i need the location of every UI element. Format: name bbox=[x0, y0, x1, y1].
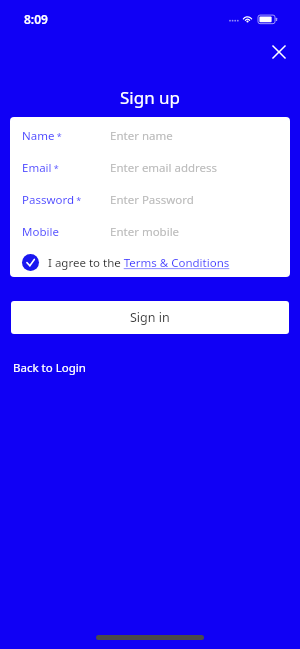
button[interactable]: Back to Login bbox=[8, 357, 91, 379]
staticText: Back to Login bbox=[13, 360, 86, 376]
staticText: Password * bbox=[22, 192, 82, 208]
staticText: Enter email address bbox=[110, 160, 218, 176]
button[interactable]: Password * bbox=[10, 184, 290, 216]
staticText: I agree to the Terms & Conditions bbox=[48, 255, 230, 271]
staticText: Sign in bbox=[130, 309, 170, 326]
button[interactable]: Name * bbox=[10, 120, 290, 152]
staticText: Sign up bbox=[120, 86, 181, 109]
button[interactable]: Sign in bbox=[11, 301, 289, 334]
button[interactable]: I agree to the Terms & Conditions bbox=[10, 248, 290, 277]
staticText: Mobile bbox=[22, 224, 59, 240]
staticText: Enter Password bbox=[110, 192, 194, 208]
staticText: Enter mobile bbox=[110, 224, 180, 240]
button[interactable]: Email * bbox=[10, 152, 290, 184]
staticText: 8:09 bbox=[24, 11, 48, 27]
button[interactable]: Close bbox=[265, 38, 293, 66]
button[interactable]: Mobile bbox=[10, 216, 290, 248]
staticText: Name * bbox=[22, 128, 62, 144]
staticText: Email * bbox=[22, 160, 59, 176]
staticText: Enter name bbox=[110, 128, 173, 144]
